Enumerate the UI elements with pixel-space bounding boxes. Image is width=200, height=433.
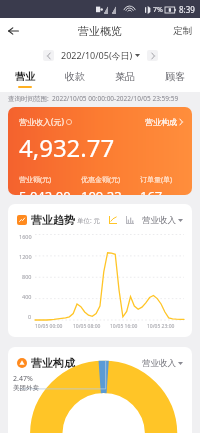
staticText: 营业构成 <box>31 356 75 370</box>
staticText: 1200 <box>19 253 32 260</box>
staticText: 8:39 <box>179 4 195 15</box>
button[interactable]: 菜品 <box>100 66 150 92</box>
staticText: 2.47% <box>13 374 33 384</box>
button[interactable]: 顾客 <box>150 66 200 92</box>
staticText: 查询时间范围: <box>8 94 49 103</box>
button[interactable]: 定制 <box>165 20 200 42</box>
staticText: 10/05 08:00 <box>73 323 110 330</box>
staticText: 订单量(单) <box>140 175 173 185</box>
button[interactable]: Next day <box>147 50 158 61</box>
staticText: 7% <box>153 5 163 15</box>
button[interactable]: Previous day <box>43 50 54 61</box>
staticText: 优惠金额(元) <box>81 175 121 185</box>
staticText: 菜品 <box>115 70 135 83</box>
staticText: 营业 <box>15 70 35 83</box>
staticText: 营业收入(元) <box>19 116 64 127</box>
staticText: 单位: 元 <box>77 216 100 225</box>
staticText: 营业收入 <box>142 358 176 369</box>
button[interactable]: Bar chart <box>124 214 136 226</box>
button[interactable]: 2022/10/05(今日) <box>61 49 140 61</box>
button[interactable]: 营业收入 <box>142 358 183 369</box>
staticText: 定制 <box>173 25 192 37</box>
staticText: 营业额(元) <box>19 175 52 185</box>
staticText: 109.23 <box>81 187 122 195</box>
staticText: 收款 <box>65 70 85 83</box>
staticText: 顾客 <box>165 70 185 83</box>
staticText: 10/05 16:00 <box>110 323 147 330</box>
button[interactable]: Back <box>0 18 26 44</box>
staticText: 2022/10/05(今日) <box>61 49 133 61</box>
button[interactable]: 收款 <box>50 66 100 92</box>
staticText: 营业收入 <box>142 215 176 226</box>
staticText: 营业趋势 <box>31 213 75 227</box>
staticText: 800 <box>22 273 32 280</box>
button[interactable]: 营业收入 <box>142 215 183 226</box>
button[interactable]: 营业 <box>0 66 50 92</box>
staticText: 美团外卖 <box>13 384 39 392</box>
staticText: 5,042.00 <box>19 187 71 195</box>
staticText: 0 <box>28 313 32 320</box>
staticText: 1600 <box>19 233 32 240</box>
staticText: 4,932.77 <box>19 131 115 164</box>
staticText: 营业概览 <box>78 24 122 38</box>
staticText: 10/05 00:00 <box>35 323 73 330</box>
staticText: 营业构成 <box>145 117 177 127</box>
button[interactable]: 营业收入(元) <box>8 107 192 195</box>
staticText: 10/05 23:00 <box>147 323 184 330</box>
staticText: 2022/10/05 00:00:00-2022/10/05 23:59:59 <box>52 94 179 103</box>
staticText: 400 <box>22 293 32 300</box>
button[interactable]: 营业构成 <box>145 117 183 127</box>
button[interactable]: Line chart <box>107 214 119 226</box>
staticText: 167 <box>140 187 163 195</box>
